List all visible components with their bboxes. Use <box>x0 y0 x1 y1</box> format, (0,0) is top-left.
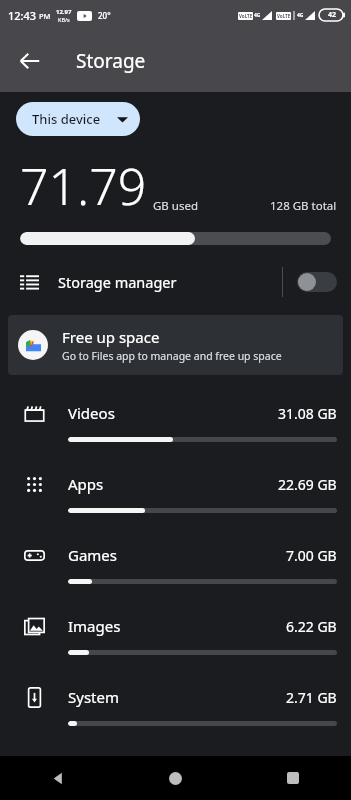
staticText: System <box>68 687 119 707</box>
staticText: Go to Files app to manage and free up sp… <box>62 349 282 363</box>
staticText: Apps <box>68 474 104 494</box>
staticText: KB/s <box>58 16 70 23</box>
staticText: 4G <box>297 12 304 19</box>
button[interactable]: Games <box>0 531 351 602</box>
button[interactable]: Home <box>117 756 234 800</box>
button[interactable]: Recent apps <box>234 756 351 800</box>
staticText: Images <box>68 616 121 636</box>
staticText: Games <box>68 545 118 565</box>
staticText: Storage manager <box>58 272 177 292</box>
staticText: PM <box>39 11 51 21</box>
staticText: 71.79 <box>20 152 147 220</box>
button[interactable]: Back <box>0 756 117 800</box>
staticText: 31.08 GB <box>278 404 337 423</box>
staticText: 4G <box>254 12 261 19</box>
staticText: 42 <box>328 10 337 20</box>
staticText: Videos <box>68 403 115 423</box>
staticText: 20° <box>98 10 111 21</box>
button[interactable]: System <box>0 673 351 744</box>
button[interactable]: Storage manager <box>0 259 351 305</box>
button[interactable]: Apps <box>0 460 351 531</box>
staticText: VoLTE <box>239 13 253 19</box>
button[interactable]: Images <box>0 602 351 673</box>
staticText: 2.71 GB <box>286 688 337 707</box>
staticText: 12.97 <box>56 8 72 16</box>
button[interactable]: Videos <box>0 389 351 460</box>
staticText: 128 GB total <box>270 198 337 214</box>
staticText: Storage <box>76 48 146 74</box>
button[interactable]: Back <box>8 39 52 83</box>
staticText: Free up space <box>62 327 160 347</box>
staticText: 6.22 GB <box>286 617 337 636</box>
staticText: 12:43 <box>8 8 37 23</box>
button[interactable]: Free up space <box>8 315 343 375</box>
button[interactable]: This device <box>16 102 140 136</box>
button[interactable]: Storage manager toggle <box>297 272 337 292</box>
staticText: VoLTE <box>277 13 291 19</box>
staticText: This device <box>32 110 101 128</box>
staticText: GB used <box>153 198 199 214</box>
staticText: 7.00 GB <box>286 546 337 565</box>
staticText: 22.69 GB <box>278 475 337 494</box>
